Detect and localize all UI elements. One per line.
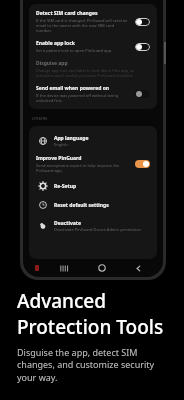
staticText: Reset default settings: [54, 202, 109, 209]
staticText: Disguise the app, detect SIM changes, an…: [17, 346, 155, 384]
staticText: Enable app lock: [36, 40, 75, 47]
button[interactable]: Disguise app: [36, 60, 150, 78]
staticText: Detect SIM card changes: [36, 10, 98, 17]
button[interactable]: Enable app lock: [36, 40, 150, 53]
button[interactable]: App language: [36, 132, 150, 150]
staticText: Deactivate PinGuard Device Admin permiss…: [54, 227, 142, 232]
staticText: Set a pattern lock to open PinGuard app.: [36, 48, 113, 53]
button[interactable]: Deactivate: [36, 217, 150, 235]
staticText: Improve PinGuard: [36, 155, 82, 162]
button[interactable]: Toggle off: [135, 43, 150, 51]
staticText: OTHERS: [32, 116, 48, 121]
staticText: Send anonymous report to help improve th…: [36, 163, 130, 173]
button[interactable]: Send email when powered on: [36, 85, 150, 103]
staticText: English: [54, 142, 68, 147]
button[interactable]: Toggle on: [135, 160, 150, 168]
button[interactable]: Re-Setup: [36, 179, 150, 193]
staticText: Send email when powered on: [36, 85, 110, 92]
staticText: App language: [54, 135, 89, 142]
staticText: Change app icon and label to look like a…: [36, 68, 150, 78]
staticText: Advanced: [17, 288, 107, 314]
button[interactable]: Improve PinGuard: [36, 155, 150, 173]
button[interactable]: Toggle off: [135, 90, 150, 98]
staticText: Protection Tools: [17, 314, 164, 340]
staticText: Disguise app: [36, 60, 68, 67]
button[interactable]: Recents: [45, 265, 83, 272]
button[interactable]: Detect SIM card changes: [36, 10, 150, 33]
staticText: Deactivate: [54, 220, 81, 227]
button[interactable]: Reset default settings: [36, 198, 150, 212]
staticText: If the SIM card is changed, PinGuard wil…: [36, 18, 130, 33]
button[interactable]: Toggle off: [135, 18, 150, 26]
button[interactable]: Home: [83, 264, 120, 272]
staticText: If the device was powered off without be…: [36, 93, 130, 103]
staticText: Re-Setup: [54, 183, 77, 190]
button[interactable]: Back: [120, 265, 157, 272]
